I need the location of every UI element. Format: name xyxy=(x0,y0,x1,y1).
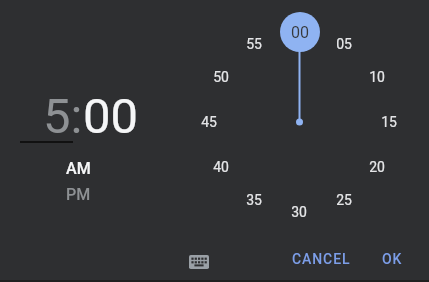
button[interactable]: PM xyxy=(56,182,100,206)
staticText: 50 xyxy=(213,69,229,85)
button[interactable]: 40 xyxy=(205,157,237,177)
staticText: 25 xyxy=(336,192,352,208)
staticText: PM xyxy=(66,185,91,204)
staticText: CANCEL xyxy=(292,251,351,267)
staticText: 35 xyxy=(246,192,262,208)
button[interactable]: 35 xyxy=(238,190,270,210)
button[interactable]: 5: xyxy=(43,88,83,145)
staticText: 15 xyxy=(381,114,397,130)
staticText: 30 xyxy=(291,204,307,220)
button[interactable]: AM xyxy=(56,156,100,180)
button[interactable]: 25 xyxy=(328,190,360,210)
staticText: 40 xyxy=(213,159,229,175)
button[interactable]: 55 xyxy=(238,34,270,54)
staticText: 05 xyxy=(336,36,352,52)
button[interactable]: 30 xyxy=(283,202,315,222)
staticText: 20 xyxy=(369,159,385,175)
staticText: 45 xyxy=(201,114,217,130)
staticText: OK xyxy=(382,251,403,267)
button[interactable]: 10 xyxy=(361,67,393,87)
button[interactable]: CANCEL xyxy=(286,245,356,273)
button[interactable] xyxy=(183,249,215,275)
button[interactable]: 05 xyxy=(328,34,360,54)
staticText: 55 xyxy=(246,36,262,52)
button[interactable]: 00 xyxy=(83,88,139,145)
button[interactable]: 20 xyxy=(361,157,393,177)
staticText: AM xyxy=(66,159,91,178)
button[interactable]: 15 xyxy=(373,112,405,132)
button[interactable]: OK xyxy=(372,245,412,273)
button[interactable]: 45 xyxy=(193,112,225,132)
button[interactable]: 50 xyxy=(205,67,237,87)
button[interactable]: 00 xyxy=(280,12,320,52)
staticText: 10 xyxy=(369,69,385,85)
staticText: 00 xyxy=(291,23,309,42)
